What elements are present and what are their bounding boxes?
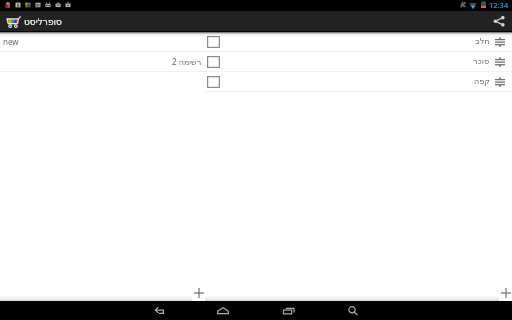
staticText: קפה [474, 77, 490, 86]
button[interactable]: Share [486, 11, 512, 32]
button[interactable]: סופרליסט [4, 11, 62, 32]
button[interactable]: רשימה 2 [0, 52, 205, 71]
staticText: סופרליסט [24, 17, 62, 27]
button[interactable]: Toggle item [207, 36, 220, 48]
button[interactable]: Search [344, 302, 362, 320]
button[interactable]: Recents [280, 302, 298, 320]
staticText: 12:34 [489, 0, 509, 10]
button[interactable]: קפה [205, 72, 512, 91]
button[interactable]: Home [214, 302, 232, 320]
button[interactable]: חלב [205, 32, 512, 51]
button[interactable]: Back [151, 302, 169, 320]
staticText: רשימה 2 [172, 56, 202, 67]
staticText: חלב [475, 37, 490, 46]
button[interactable]: Add item [499, 282, 512, 301]
button[interactable]: new [0, 32, 205, 51]
button[interactable]: Add list [192, 282, 205, 301]
staticText: new [3, 36, 19, 47]
button[interactable]: סוכר [205, 52, 512, 71]
button[interactable]: Toggle item [207, 76, 220, 88]
button[interactable]: Toggle item [207, 56, 220, 68]
staticText: סוכר [473, 57, 490, 66]
